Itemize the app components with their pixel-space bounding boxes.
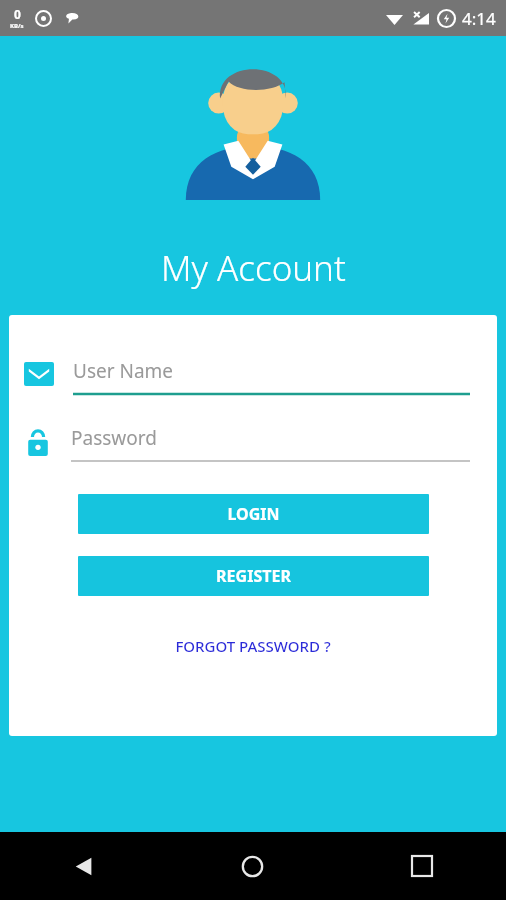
button[interactable]: User Name bbox=[73, 356, 470, 397]
staticText: 0 bbox=[14, 6, 21, 22]
other: Email bbox=[24, 362, 54, 386]
button[interactable]: Home bbox=[168, 832, 337, 900]
staticText: User Name bbox=[73, 358, 174, 384]
staticText: FORGOT PASSWORD ? bbox=[175, 636, 331, 656]
button[interactable]: FORGOT PASSWORD ? bbox=[9, 636, 497, 656]
staticText: KB/s bbox=[10, 22, 24, 30]
button[interactable]: REGISTER bbox=[78, 556, 429, 596]
button[interactable]: Password bbox=[71, 423, 470, 464]
other: Password bbox=[24, 429, 52, 459]
button[interactable]: Back bbox=[0, 832, 168, 900]
staticText: My Account bbox=[161, 244, 346, 292]
button[interactable]: Recents bbox=[337, 832, 506, 900]
button[interactable]: LOGIN bbox=[78, 494, 429, 534]
staticText: Password bbox=[71, 425, 157, 451]
staticText: LOGIN bbox=[227, 503, 280, 525]
staticText: 4:14 bbox=[462, 7, 496, 30]
staticText: REGISTER bbox=[216, 565, 291, 587]
